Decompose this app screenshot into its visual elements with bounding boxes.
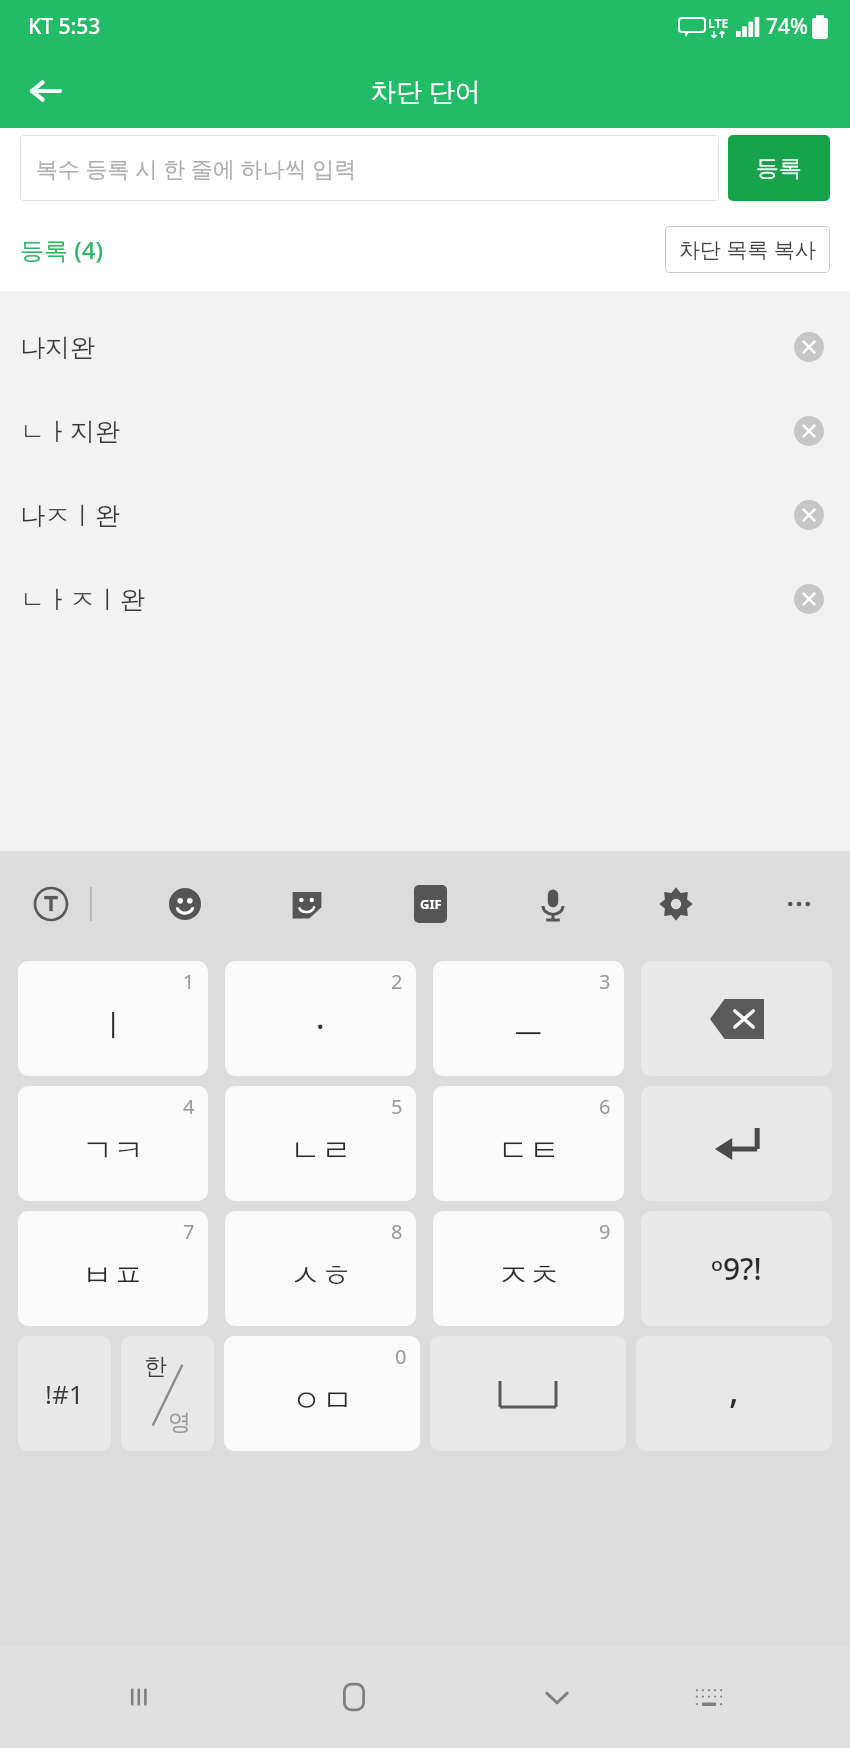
button[interactable]: Back bbox=[14, 60, 76, 122]
button[interactable]: Recents bbox=[103, 1660, 177, 1734]
staticText: , bbox=[729, 1365, 739, 1414]
button[interactable]: Korean English toggle bbox=[121, 1336, 214, 1451]
staticText: ㄴㄹ bbox=[290, 1131, 352, 1170]
button[interactable]: !#1 bbox=[18, 1336, 111, 1451]
staticText: 2 bbox=[391, 968, 403, 995]
button[interactable]: 나ㅈㅣ완 bbox=[0, 473, 850, 557]
staticText: ㄷㅌ bbox=[498, 1131, 560, 1170]
staticText: 0 bbox=[395, 1343, 407, 1370]
staticText: 4 bbox=[183, 1093, 195, 1120]
button[interactable]: More options bbox=[770, 875, 828, 933]
button[interactable]: 등록 bbox=[728, 135, 830, 201]
button[interactable]: ㄴㅏㅈㅣ완 bbox=[0, 557, 850, 641]
staticText: ㅅㅎ bbox=[290, 1256, 352, 1295]
staticText: !#1 bbox=[45, 1376, 84, 1411]
button[interactable]: 나지완 bbox=[0, 305, 850, 389]
button[interactable]: 9 bbox=[433, 1211, 624, 1326]
staticText: 나지완 bbox=[20, 332, 95, 363]
staticText: ㅈㅊ bbox=[498, 1256, 560, 1295]
staticText: 영 bbox=[168, 1408, 191, 1437]
button[interactable]: 4 bbox=[18, 1086, 208, 1201]
staticText: 9 bbox=[599, 1218, 611, 1245]
staticText: ㅇㅁ bbox=[291, 1381, 353, 1420]
button[interactable]: 2 bbox=[225, 961, 416, 1076]
button[interactable]: Delete bbox=[782, 572, 836, 626]
button[interactable]: 7 bbox=[18, 1211, 208, 1326]
button[interactable]: Hide keyboard bbox=[520, 1660, 594, 1734]
button[interactable]: Delete bbox=[782, 488, 836, 542]
staticText: 5 bbox=[391, 1093, 403, 1120]
staticText: GIF bbox=[420, 895, 442, 913]
staticText: 차단 단어 bbox=[370, 73, 481, 109]
button[interactable]: Punctuation bbox=[641, 1211, 832, 1326]
button[interactable]: Sticker bbox=[278, 875, 336, 933]
staticText: 등록 (4) bbox=[20, 233, 103, 266]
staticText: · bbox=[316, 1005, 325, 1047]
button[interactable]: 1 bbox=[18, 961, 208, 1076]
staticText: ᵒ9?! bbox=[711, 1248, 762, 1289]
staticText: ㄱㅋ bbox=[82, 1131, 144, 1170]
button[interactable]: GIF bbox=[401, 875, 459, 933]
staticText: ㅡ bbox=[513, 1006, 544, 1045]
button[interactable]: 0 bbox=[224, 1336, 420, 1451]
staticText: 등록 bbox=[756, 154, 802, 183]
button[interactable]: Settings bbox=[647, 875, 705, 933]
button[interactable]: Translate bbox=[22, 875, 80, 933]
staticText: 74% bbox=[766, 12, 808, 41]
staticText: 8 bbox=[391, 1218, 403, 1245]
button[interactable]: Enter bbox=[641, 1086, 832, 1201]
staticText: 나ㅈㅣ완 bbox=[20, 500, 120, 531]
staticText: 차단 목록 복사 bbox=[679, 235, 816, 264]
button[interactable]: ㄴㅏ지완 bbox=[0, 389, 850, 473]
staticText: ㅂㅍ bbox=[82, 1256, 144, 1295]
staticText: 한 bbox=[144, 1352, 167, 1381]
staticText: 1 bbox=[183, 968, 195, 995]
button[interactable]: 3 bbox=[433, 961, 624, 1076]
button[interactable]: 6 bbox=[433, 1086, 624, 1201]
staticText: LTE bbox=[708, 15, 729, 31]
button[interactable]: Voice input bbox=[524, 875, 582, 933]
button[interactable]: 8 bbox=[225, 1211, 416, 1326]
staticText: KT 5:53 bbox=[28, 12, 101, 41]
button[interactable]: 복수 등록 시 한 줄에 하나씩 입력 bbox=[20, 135, 719, 201]
staticText: ㄴㅏ지완 bbox=[20, 416, 120, 447]
button[interactable]: Delete bbox=[782, 320, 836, 374]
staticText: ㄴㅏㅈㅣ완 bbox=[20, 584, 145, 615]
button[interactable]: Delete bbox=[782, 404, 836, 458]
staticText: 7 bbox=[183, 1218, 195, 1245]
staticText: 3 bbox=[599, 968, 611, 995]
button[interactable]: , bbox=[636, 1336, 832, 1451]
button[interactable]: Emoji bbox=[156, 875, 214, 933]
button[interactable]: 5 bbox=[225, 1086, 416, 1201]
staticText: 6 bbox=[599, 1093, 611, 1120]
button[interactable]: Keyboard bbox=[672, 1660, 746, 1734]
button[interactable]: 차단 목록 복사 bbox=[665, 226, 830, 273]
button[interactable]: Home bbox=[317, 1660, 391, 1734]
staticText: 복수 등록 시 한 줄에 하나씩 입력 bbox=[36, 153, 357, 183]
staticText: ㅣ bbox=[98, 1006, 129, 1045]
button[interactable]: Backspace bbox=[641, 961, 832, 1076]
button[interactable]: Space bbox=[430, 1336, 626, 1451]
